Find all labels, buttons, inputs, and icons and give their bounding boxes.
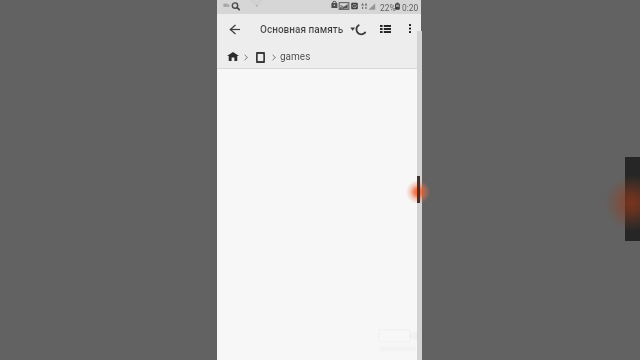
staticText: 0:20	[402, 3, 419, 13]
button[interactable]: More options	[401, 19, 419, 37]
button[interactable]: Home	[224, 48, 241, 65]
button[interactable]: Night mode	[350, 22, 369, 38]
button[interactable]: games	[280, 51, 311, 63]
button[interactable]: Internal storage	[253, 50, 268, 65]
staticText: 22%	[380, 3, 396, 13]
button[interactable]: Switch view	[375, 19, 395, 39]
staticText: Основная память	[260, 24, 344, 36]
button[interactable]: Back	[225, 19, 245, 39]
